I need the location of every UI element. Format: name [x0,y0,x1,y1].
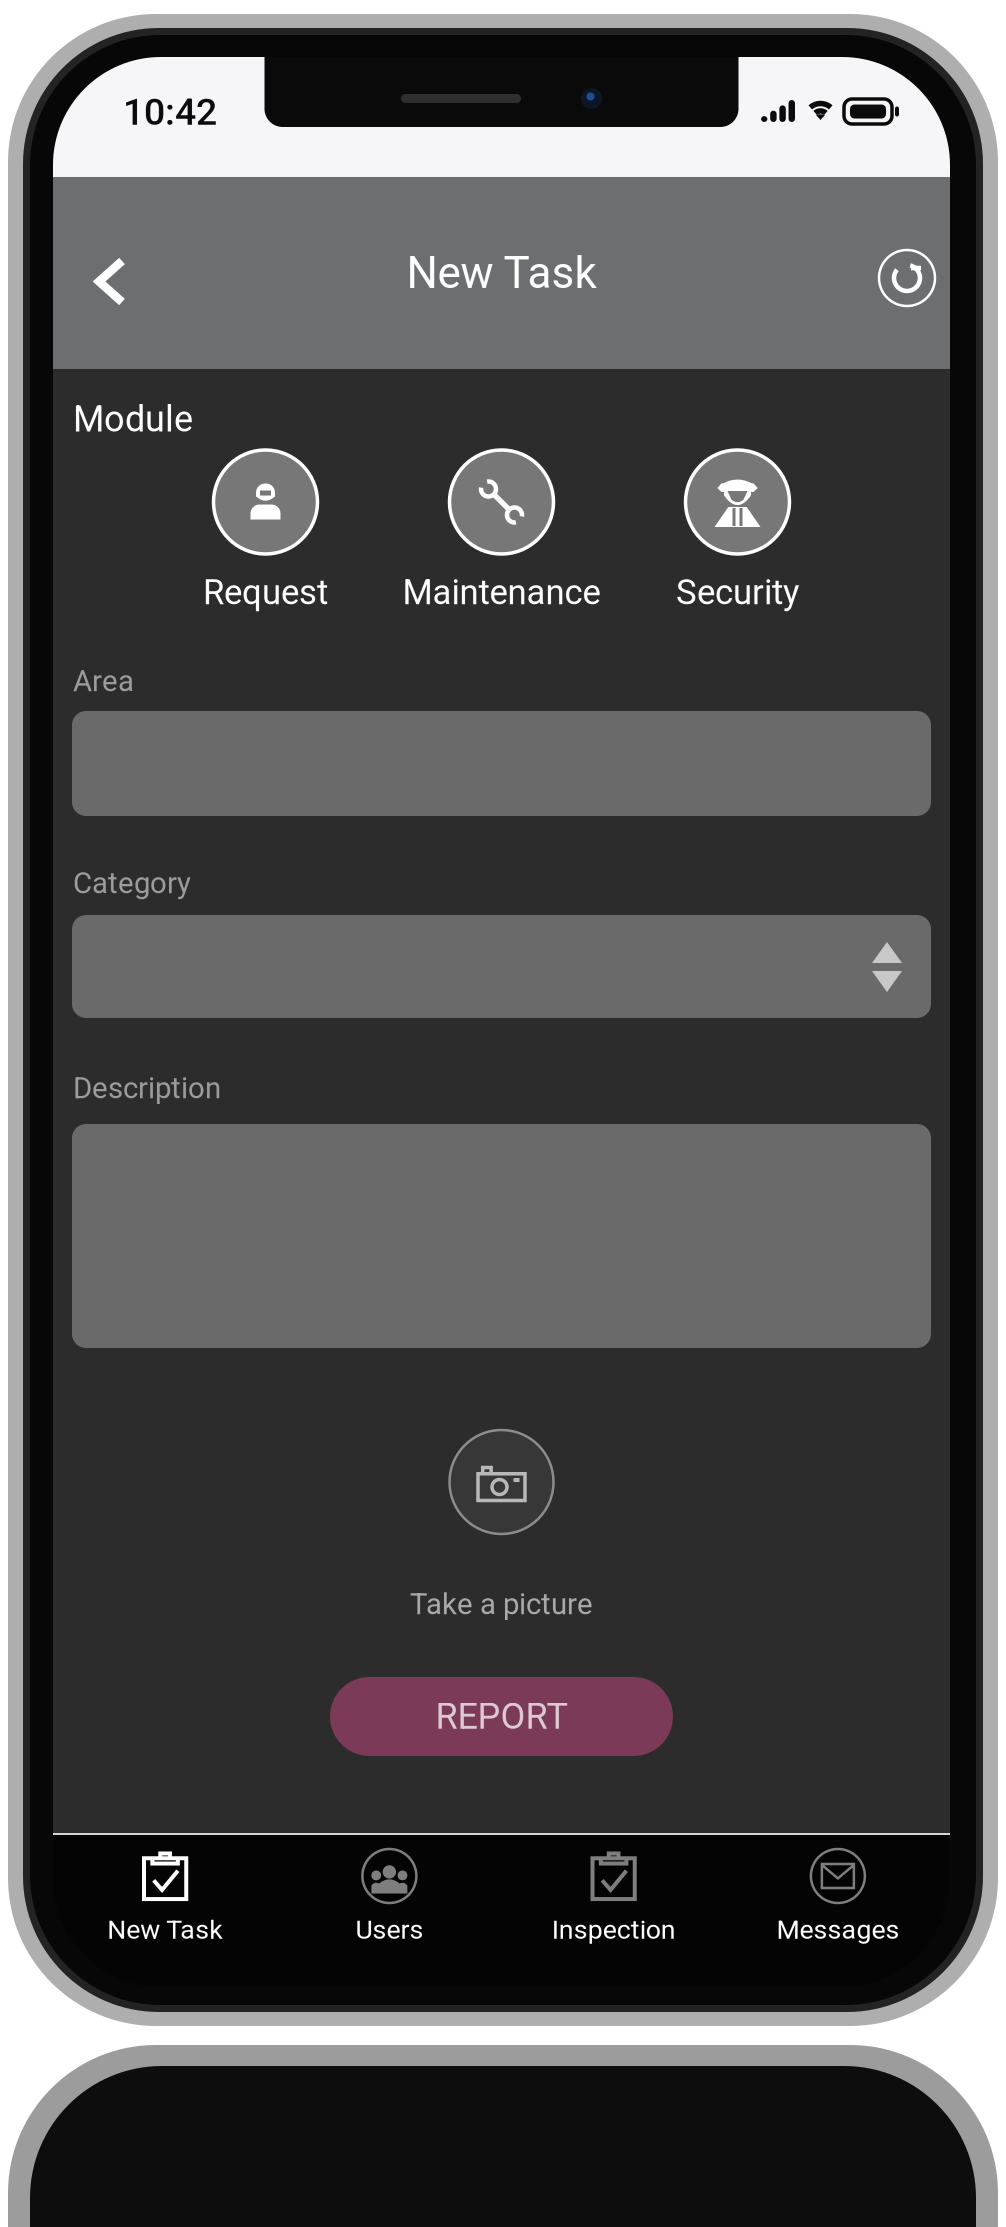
button[interactable]: REPORT [330,1677,673,1756]
staticText: Users [355,1914,423,1945]
button[interactable]: Users [277,1849,501,1945]
button[interactable]: Security [676,447,799,613]
staticText: Maintenance [402,572,600,613]
button[interactable]: Maintenance [402,447,600,613]
staticText: New Task [107,1914,223,1945]
staticText: 10:42 [123,90,217,134]
button[interactable]: Messages [726,1849,950,1945]
staticText: Messages [776,1914,899,1945]
button[interactable]: Back [71,235,150,328]
staticText: Category [73,866,191,900]
button[interactable]: Refresh [863,234,951,322]
staticText: Module [73,398,193,440]
staticText: Request [203,572,328,613]
staticText: Area [73,664,134,698]
button[interactable]: Request [203,447,328,613]
staticText: Take a picture [410,1587,593,1621]
staticText: Description [73,1071,221,1105]
staticText: New Task [406,247,596,299]
staticText: Inspection [552,1914,676,1945]
button[interactable]: Inspection [501,1849,726,1945]
staticText: REPORT [435,1695,567,1738]
button[interactable]: Take a picture [446,1427,556,1537]
button[interactable]: New Task [53,1849,277,1945]
staticText: Security [676,572,799,613]
